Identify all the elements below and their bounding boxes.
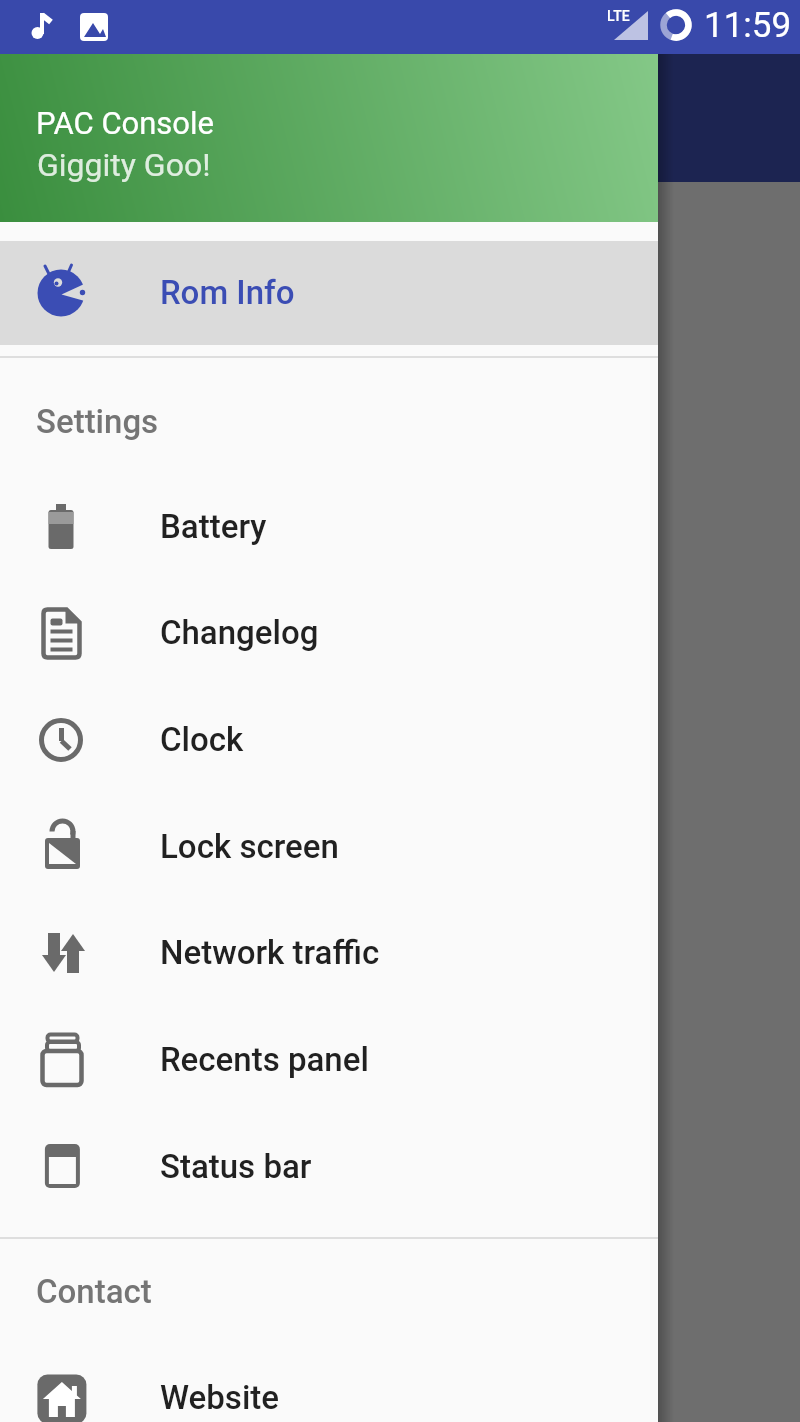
staticText: 11:59	[704, 5, 792, 46]
staticText: Rom Info	[160, 273, 295, 312]
staticText: Status bar	[160, 1147, 312, 1186]
staticText: Recents panel	[160, 1040, 369, 1079]
staticText: Settings	[36, 402, 159, 441]
staticText: Changelog	[160, 613, 319, 652]
staticText: LTE	[607, 8, 630, 24]
staticText: Contact	[36, 1272, 152, 1311]
staticText: Lock screen	[160, 827, 339, 866]
staticText: PAC Console	[36, 105, 215, 141]
staticText: Clock	[160, 720, 244, 759]
staticText: Website	[160, 1378, 280, 1417]
staticText: Giggity Goo!	[37, 146, 211, 184]
staticText: Battery	[160, 507, 267, 546]
staticText: Network traffic	[160, 933, 380, 972]
